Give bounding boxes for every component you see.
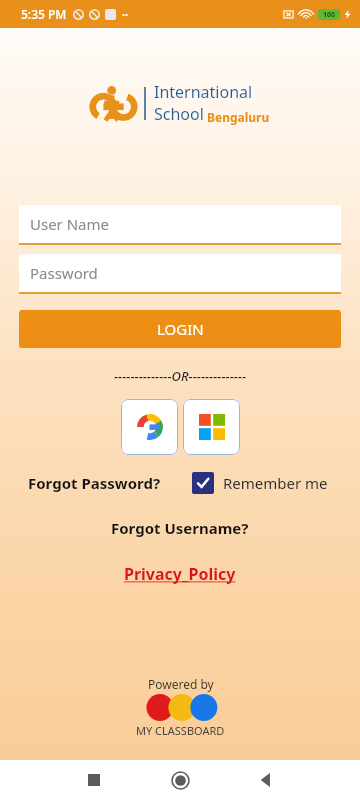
button[interactable]: Home <box>164 764 196 796</box>
staticText: 5:35 PM <box>21 6 67 22</box>
staticText: Bengaluru <box>207 109 270 125</box>
staticText: MY CLASSBOARD <box>136 723 225 738</box>
button[interactable]: Privacy_Policy <box>124 563 236 585</box>
button[interactable]: Sign in with Google <box>121 399 178 455</box>
button[interactable]: Password <box>19 254 341 294</box>
staticText: School <box>154 103 204 125</box>
button[interactable]: User Name <box>19 205 341 245</box>
button[interactable]: Forgot Username? <box>111 518 249 538</box>
button[interactable]: Recent apps <box>78 764 110 796</box>
staticText: ·· <box>122 7 129 22</box>
staticText: Password <box>30 263 98 283</box>
staticText: 100 <box>323 10 336 20</box>
staticText: Powered by <box>148 676 214 692</box>
button[interactable]: Remember me <box>192 472 328 494</box>
button[interactable]: Sign in with Microsoft <box>183 399 240 455</box>
staticText: User Name <box>30 214 110 234</box>
staticText: Remember me <box>223 473 328 493</box>
staticText: --------------OR-------------- <box>114 367 247 385</box>
button[interactable]: Back <box>250 764 282 796</box>
staticText: International <box>154 81 253 103</box>
staticText: LOGIN <box>157 319 204 339</box>
button[interactable]: Forgot Password? <box>28 473 161 493</box>
button[interactable]: LOGIN <box>19 310 341 348</box>
